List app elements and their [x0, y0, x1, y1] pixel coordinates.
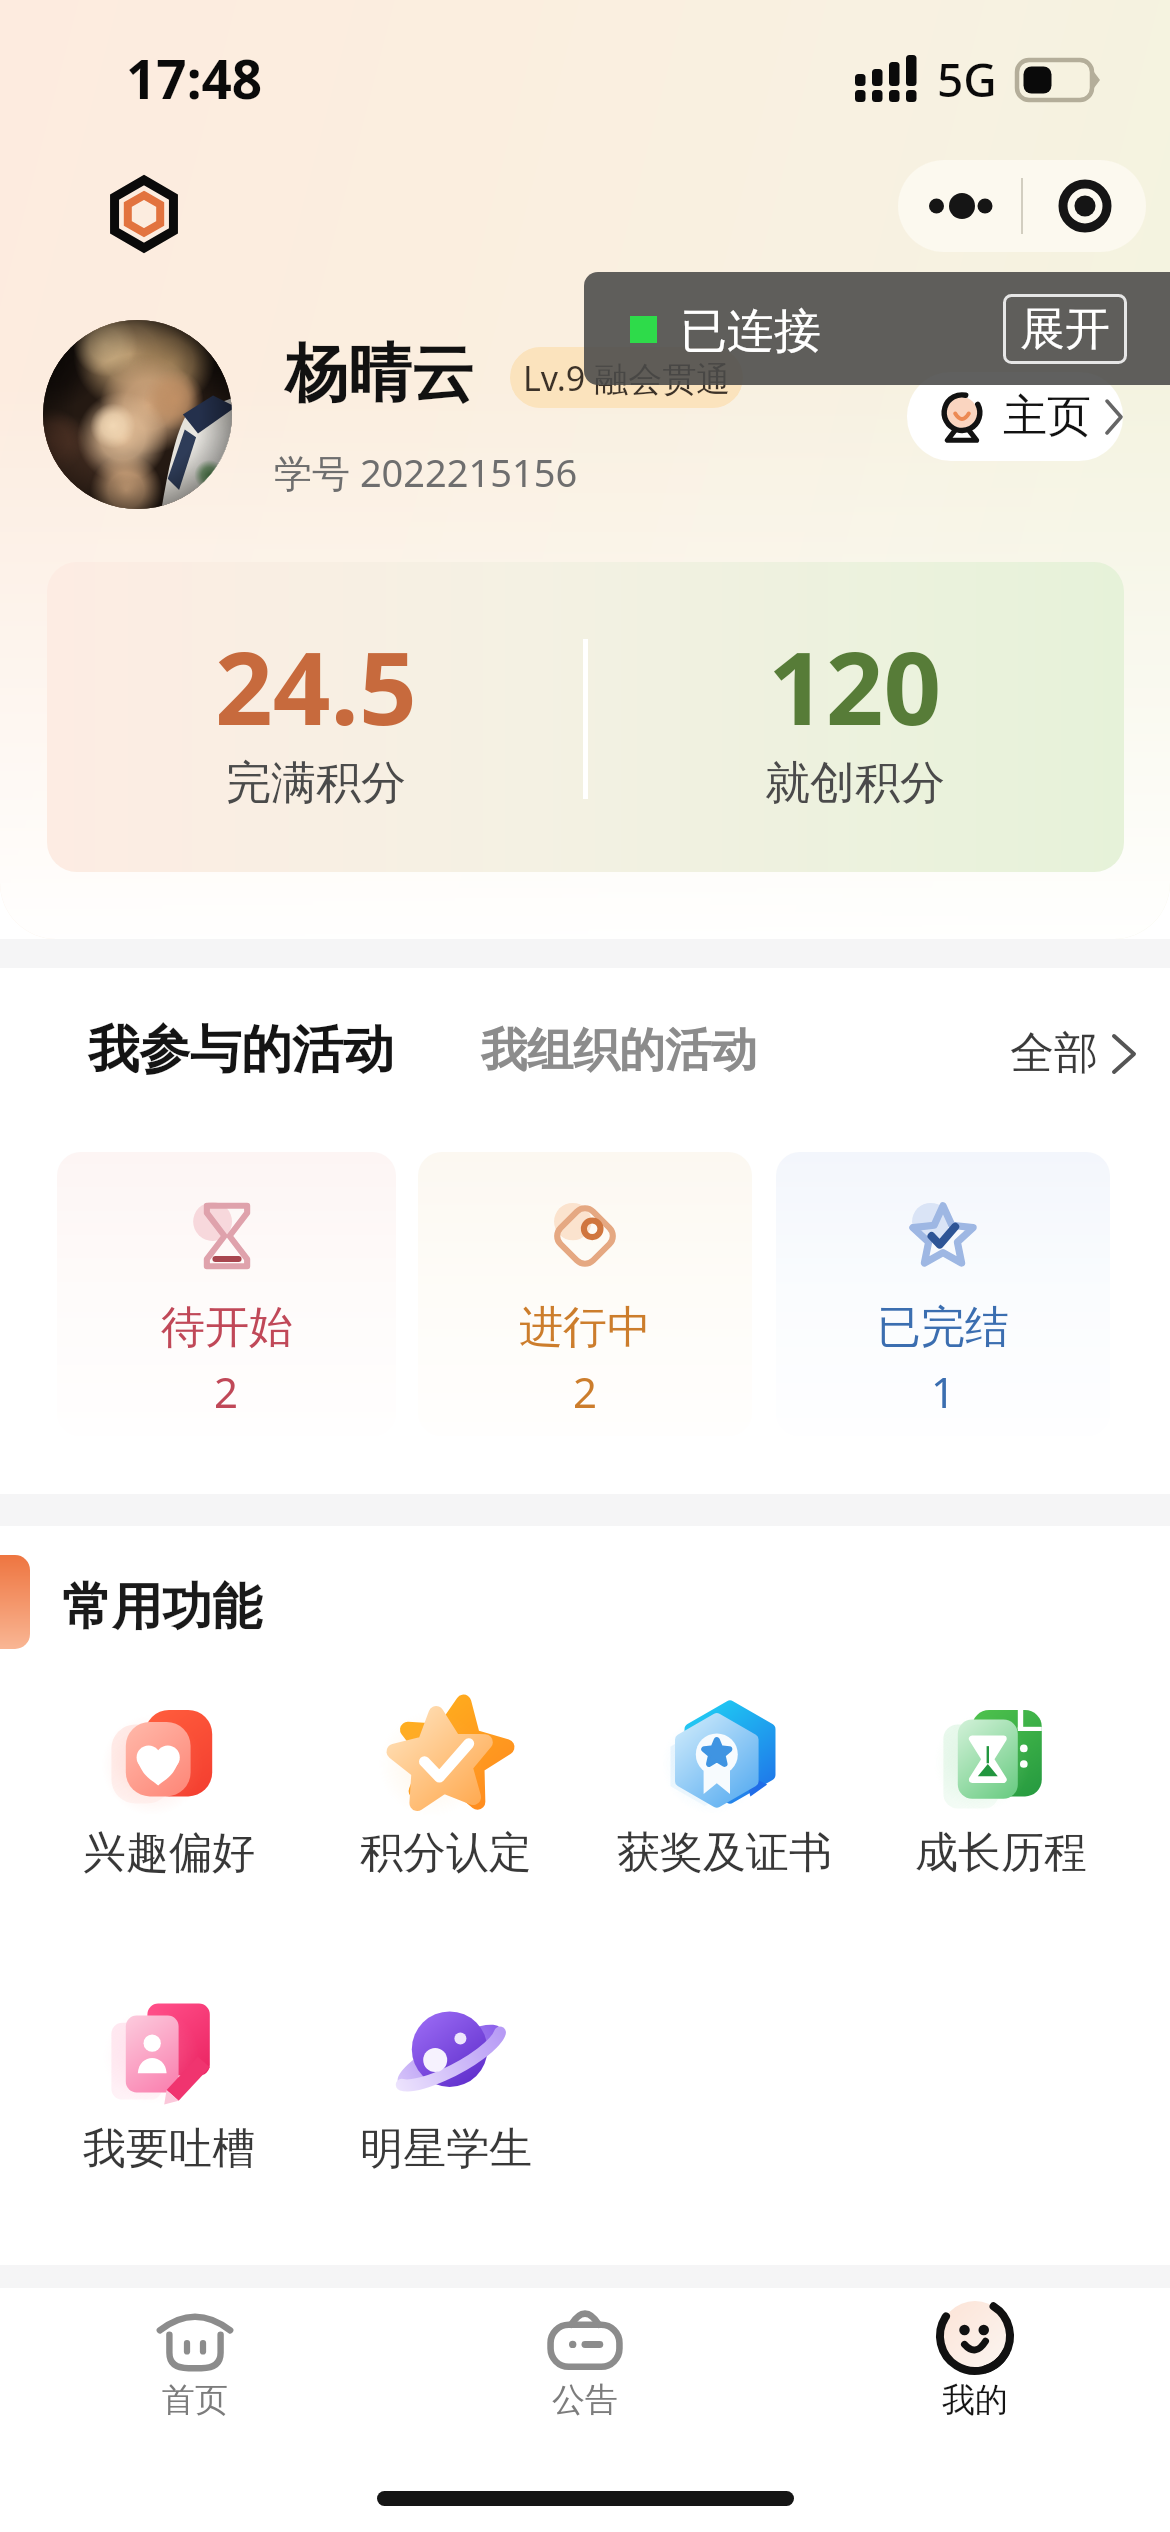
staticText: 我参与的活动 — [88, 1018, 394, 1082]
staticText: 我要吐槽 — [83, 2122, 255, 2176]
staticText: 主页 — [1003, 389, 1091, 444]
staticText: 公告 — [552, 2379, 618, 2421]
staticText: 已完结 — [877, 1300, 1009, 1355]
staticText: 我的 — [942, 2379, 1008, 2421]
button[interactable]: 公告 — [390, 2288, 780, 2478]
staticText: 就创积分 — [765, 755, 945, 812]
button[interactable]: 我组织的活动 — [481, 1022, 757, 1080]
staticText: 24.5 — [215, 617, 417, 755]
staticText: 首页 — [162, 2379, 228, 2421]
staticText: 常用功能 — [62, 1576, 262, 1639]
button[interactable]: Avatar — [43, 320, 232, 509]
staticText: 已连接 — [680, 302, 821, 361]
staticText: 进行中 — [519, 1300, 651, 1355]
button[interactable]: 获奖及证书 — [589, 1698, 859, 1880]
button[interactable]: 明星学生 — [311, 1994, 581, 2176]
staticText: Lv.9 融会贯通 — [523, 355, 731, 401]
staticText: 120 — [768, 617, 942, 755]
button[interactable]: Logo — [110, 180, 178, 248]
staticText: 1 — [931, 1363, 956, 1420]
button[interactable]: 首页 — [0, 2288, 390, 2478]
button[interactable]: More — [898, 160, 1021, 252]
button[interactable]: Lv.9 融会贯通 — [510, 347, 743, 408]
button[interactable]: 我要吐槽 — [34, 1994, 304, 2176]
button[interactable]: 进行中 — [418, 1152, 752, 1436]
button[interactable]: 成长历程 — [866, 1698, 1136, 1880]
button[interactable]: 兴趣偏好 — [34, 1698, 304, 1880]
staticText: 待开始 — [161, 1300, 293, 1355]
staticText: 我组织的活动 — [481, 1022, 757, 1080]
staticText: 完满积分 — [226, 755, 406, 812]
staticText: 兴趣偏好 — [83, 1826, 255, 1880]
button[interactable]: 全部 — [1010, 1026, 1136, 1081]
staticText: 杨晴云 — [285, 334, 474, 413]
staticText: 17:48 — [126, 42, 263, 114]
staticText: 展开 — [1020, 301, 1110, 358]
staticText: 5G — [937, 48, 997, 111]
staticText: 2 — [214, 1363, 239, 1420]
button[interactable]: 积分认定 — [311, 1698, 581, 1880]
button[interactable]: 待开始 — [57, 1152, 396, 1436]
button[interactable]: Close — [1023, 160, 1146, 252]
staticText: 获奖及证书 — [617, 1826, 832, 1880]
button[interactable]: 主页 — [907, 372, 1123, 461]
staticText: 学号 2022215156 — [274, 446, 578, 498]
button[interactable]: 展开 — [1003, 294, 1127, 364]
staticText: 积分认定 — [360, 1826, 532, 1880]
staticText: 2 — [573, 1363, 598, 1420]
button[interactable]: 我的 — [780, 2288, 1170, 2478]
staticText: 全部 — [1010, 1026, 1098, 1081]
button[interactable]: 我参与的活动 — [88, 1018, 394, 1082]
staticText: 成长历程 — [915, 1826, 1087, 1880]
button[interactable]: 24.5 — [47, 562, 1124, 872]
button[interactable]: 已完结 — [776, 1152, 1110, 1436]
staticText: 明星学生 — [360, 2122, 532, 2176]
